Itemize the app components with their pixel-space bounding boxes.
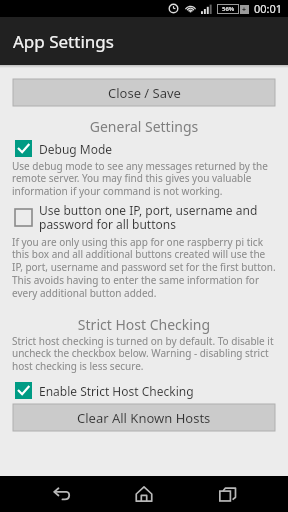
staticText: Strict host checking is turned on by def… (12, 334, 276, 373)
button[interactable]: Recent apps (205, 476, 249, 512)
staticText: 00:01 (254, 1, 283, 16)
button[interactable]: Close / Save (13, 79, 275, 106)
staticText: Enable Strict Host Checking (39, 383, 194, 399)
button[interactable]: Enable Strict Host Checking (15, 382, 278, 399)
button[interactable]: Home (122, 476, 166, 512)
staticText: General Settings (0, 117, 288, 136)
staticText: Use debug mode to see any messages retur… (12, 159, 276, 198)
staticText: Clear All Known Hosts (77, 409, 211, 427)
staticText: Debug Mode (39, 141, 113, 157)
button[interactable]: Debug Mode (15, 140, 278, 157)
staticText: App Settings (13, 30, 114, 53)
staticText: + (242, 5, 247, 14)
staticText: Close / Save (108, 84, 181, 102)
button[interactable]: Use button one IP, port, username and pa… (15, 202, 278, 233)
staticText: Use button one IP, port, username and pa… (39, 202, 278, 233)
button[interactable]: Clear All Known Hosts (13, 404, 275, 431)
staticText: 56% (222, 5, 235, 13)
button[interactable]: Back (39, 476, 83, 512)
staticText: If you are only using this app for one r… (12, 235, 276, 300)
staticText: Strict Host Checking (0, 315, 288, 334)
